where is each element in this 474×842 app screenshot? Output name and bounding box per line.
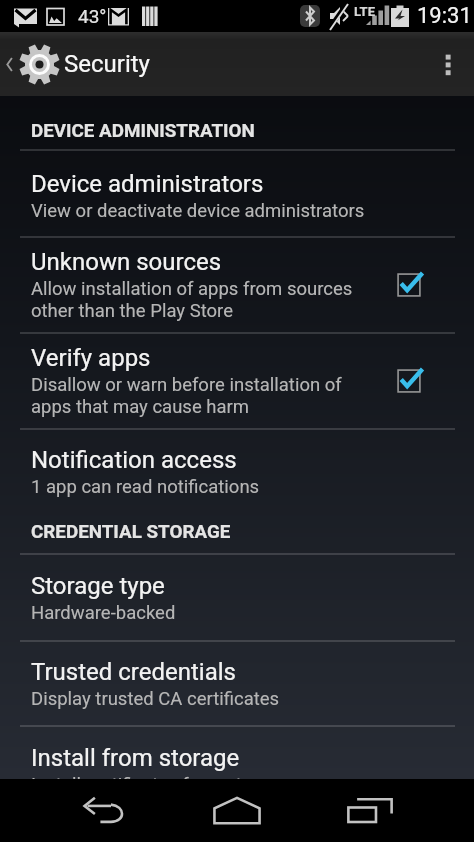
button[interactable]: Verify apps bbox=[0, 334, 474, 428]
button[interactable]: Device administrators bbox=[0, 151, 474, 236]
button[interactable]: Storage type bbox=[0, 555, 474, 640]
staticText: LTE bbox=[354, 4, 375, 19]
staticText: Security bbox=[64, 50, 150, 78]
button[interactable]: More options bbox=[422, 32, 474, 96]
staticText: DEVICE ADMINISTRATION bbox=[31, 120, 255, 142]
staticText: Display trusted CA certificates bbox=[31, 688, 280, 710]
staticText: Install certificates from storage bbox=[31, 774, 289, 779]
staticText: Allow installation of apps from sources … bbox=[31, 278, 353, 322]
button[interactable]: Trusted credentials bbox=[0, 642, 474, 725]
button[interactable]: Navigate up bbox=[0, 32, 294, 96]
staticText: Trusted credentials bbox=[31, 658, 236, 686]
button[interactable]: Unknown sources bbox=[0, 238, 474, 332]
staticText: Disallow or warn before installation of … bbox=[31, 374, 342, 418]
staticText: Install from storage bbox=[31, 744, 240, 772]
staticText: 43° bbox=[78, 5, 107, 27]
button[interactable]: Recent apps bbox=[305, 779, 435, 842]
staticText: Device administrators bbox=[31, 170, 264, 198]
staticText: 1 app can read notifications bbox=[31, 476, 260, 498]
button[interactable]: Notification access bbox=[0, 430, 474, 513]
staticText: Storage type bbox=[31, 572, 165, 600]
staticText: Hardware-backed bbox=[31, 602, 176, 624]
staticText: Notification access bbox=[31, 446, 237, 474]
staticText: 19:31 bbox=[417, 3, 472, 29]
staticText: CREDENTIAL STORAGE bbox=[31, 521, 231, 543]
staticText: Verify apps bbox=[31, 344, 151, 372]
staticText: View or deactivate device administrators bbox=[31, 200, 365, 222]
button[interactable]: Install from storage bbox=[0, 727, 474, 779]
button[interactable]: Home bbox=[172, 779, 302, 842]
staticText: Unknown sources bbox=[31, 248, 222, 276]
button[interactable]: Back bbox=[40, 779, 170, 842]
